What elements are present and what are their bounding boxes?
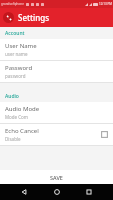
button[interactable]: Echo Cancel checkbox (101, 131, 108, 138)
staticText: SAVE (50, 174, 63, 181)
button[interactable]: Recents (81, 184, 97, 200)
staticText: Audio Mode (5, 105, 40, 113)
staticText: Echo Cancel (5, 127, 39, 135)
staticText: Password (5, 64, 33, 72)
staticText: password (5, 73, 26, 79)
button[interactable]: Echo Cancel (0, 124, 113, 145)
button[interactable]: Back (16, 184, 32, 200)
button[interactable]: User Name (0, 39, 113, 60)
staticText: Settings (18, 12, 50, 23)
staticText: Mode Com (5, 114, 29, 120)
staticText: user name (5, 51, 28, 57)
other: App icon (3, 12, 14, 23)
staticText: Audio (5, 93, 19, 100)
button[interactable]: Password (0, 61, 113, 82)
staticText: 12:13 PM (99, 2, 112, 6)
staticText: Account (5, 30, 25, 37)
button[interactable]: Home (49, 184, 65, 200)
staticText: Disable (5, 136, 21, 142)
button[interactable]: SAVE (42, 172, 71, 183)
staticText: grandsoftphone (1, 2, 24, 6)
button[interactable]: Audio Mode (0, 102, 113, 123)
staticText: User Name (5, 42, 37, 50)
